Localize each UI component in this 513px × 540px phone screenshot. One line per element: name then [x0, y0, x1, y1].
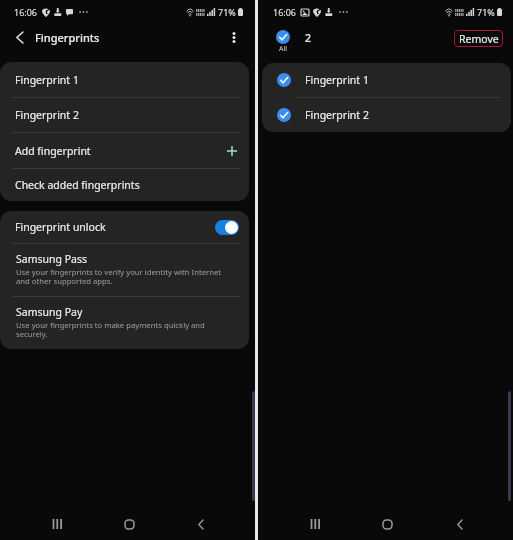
staticText: 16:06 [273, 6, 297, 18]
staticText: Samsung Pass [16, 252, 87, 266]
button[interactable]: Home [373, 510, 401, 538]
staticText: Use your fingerprints to make payments q… [16, 320, 205, 340]
button[interactable]: Back [445, 510, 473, 538]
staticText: 16:06 [14, 6, 38, 18]
button[interactable]: Fingerprint 2 [262, 98, 511, 132]
staticText: Fingerprint 2 [15, 108, 79, 122]
button[interactable]: Check added fingerprints [0, 169, 249, 201]
button[interactable]: Recent apps [301, 510, 329, 538]
button[interactable]: Fingerprint 1 [262, 63, 511, 97]
staticText: Add fingerprint [15, 144, 91, 158]
staticText: Fingerprints [35, 30, 100, 45]
button[interactable]: Fingerprint unlock [215, 220, 239, 235]
button[interactable]: Add fingerprint [0, 133, 249, 168]
button[interactable]: Remove [454, 30, 503, 47]
staticText: Fingerprint 1 [15, 73, 79, 87]
staticText: Remove [459, 32, 499, 46]
staticText: 2 [305, 31, 312, 45]
staticText: Check added fingerprints [15, 178, 140, 192]
button[interactable]: Navigate up [8, 26, 31, 49]
staticText: 71% [477, 6, 495, 18]
button[interactable]: Back [186, 510, 214, 538]
button[interactable]: More options [222, 26, 245, 49]
button[interactable]: Recent apps [43, 510, 71, 538]
button[interactable]: Samsung Pay [0, 297, 249, 349]
staticText: Fingerprint unlock [15, 220, 106, 234]
button[interactable]: Fingerprint unlock [0, 211, 249, 243]
button[interactable]: Fingerprint 2 [0, 98, 249, 132]
staticText: All [279, 44, 288, 54]
staticText: 71% [218, 6, 236, 18]
button[interactable]: Home [115, 510, 143, 538]
staticText: Samsung Pay [16, 305, 83, 319]
staticText: Use your fingerprints to verify your ide… [16, 267, 222, 287]
button[interactable]: Fingerprint 1 [0, 62, 249, 97]
staticText: Fingerprint 1 [305, 73, 369, 87]
staticText: Fingerprint 2 [305, 108, 369, 122]
button[interactable]: Samsung Pass [0, 244, 249, 296]
button[interactable]: Select all [273, 30, 293, 54]
